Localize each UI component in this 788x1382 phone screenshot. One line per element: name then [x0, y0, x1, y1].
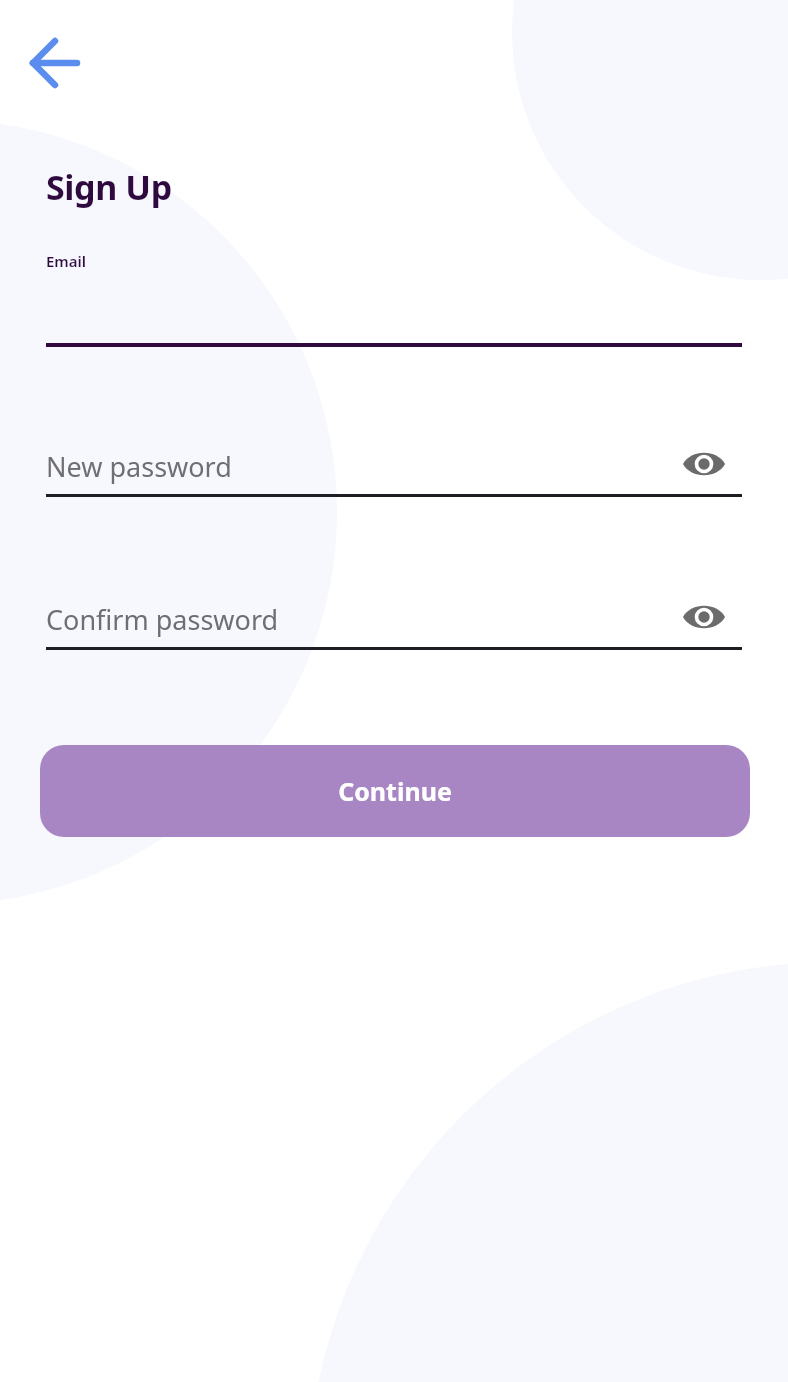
staticText: Email: [46, 251, 87, 271]
staticText: Sign Up: [46, 164, 172, 210]
staticText: New password: [46, 448, 232, 485]
button[interactable]: Back: [17, 27, 89, 99]
button[interactable]: Show confirm password: [673, 586, 735, 648]
staticText: Continue: [338, 774, 452, 808]
staticText: Confirm password: [46, 601, 279, 638]
button[interactable]: Continue: [40, 745, 750, 837]
button[interactable]: Show new password: [673, 433, 735, 495]
